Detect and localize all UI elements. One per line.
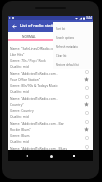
staticText: Name: "SafeLinesOfRadio.com - Like Hits"… — [10, 45, 60, 68]
staticText: NORMAL — [22, 35, 36, 39]
button[interactable]: Add to favorites — [84, 102, 89, 107]
staticText: Search options — [56, 36, 75, 40]
staticText: Name: "AddictedToRadio.com - Country" Ge… — [10, 95, 58, 118]
button[interactable]: Add to favorites — [84, 77, 89, 82]
button[interactable]: Station options — [84, 110, 89, 115]
button[interactable]: Station options — [84, 135, 89, 140]
button[interactable]: Name: "AddictedToRadio.com - Bar Rockin … — [8, 118, 93, 143]
staticText: Sort list — [56, 27, 66, 31]
button[interactable]: Navigate up — [8, 20, 20, 32]
button[interactable]: NORMAL — [8, 32, 50, 43]
staticText: List of radio stations — [20, 23, 61, 29]
staticText: Refresh metadata — [56, 45, 78, 49]
button[interactable]: Play station — [84, 69, 89, 74]
button[interactable]: Clear list — [56, 51, 93, 60]
button[interactable]: Name: "AddictedToRadio.com - Blues Class… — [8, 143, 93, 150]
button[interactable]: Restore default list — [56, 60, 93, 69]
button[interactable]: Search options — [56, 33, 93, 42]
staticText: Name: "AddictedToRadio.com - Bar Rockin … — [10, 120, 64, 143]
button[interactable]: Play station — [84, 144, 89, 149]
button[interactable]: Back — [22, 151, 32, 161]
button[interactable]: Name: "AddictedToRadio.com - Your Office… — [8, 68, 93, 93]
staticText: Name: "AddictedToRadio.com - Your Office… — [10, 70, 58, 93]
button[interactable]: Home — [46, 151, 56, 161]
button[interactable]: Recent apps — [69, 151, 79, 161]
button[interactable]: Station options — [84, 85, 89, 90]
button[interactable]: Sort list — [56, 24, 93, 33]
staticText: 3:24 — [86, 16, 92, 20]
button[interactable]: Name: "AddictedToRadio.com - Country" Ge… — [8, 93, 93, 118]
staticText: Name: "AddictedToRadio.com - Blues Class… — [10, 145, 67, 150]
button[interactable]: Add to favorites — [84, 127, 89, 132]
button[interactable]: Name: "SafeLinesOfRadio.com - Like Hits"… — [8, 43, 93, 68]
button[interactable]: Play station — [84, 94, 89, 99]
staticText: Clear list — [56, 54, 67, 58]
button[interactable]: Play station — [84, 119, 89, 124]
button[interactable]: Refresh metadata — [56, 42, 93, 51]
staticText: Restore default list — [56, 63, 79, 67]
button[interactable] — [50, 32, 93, 43]
